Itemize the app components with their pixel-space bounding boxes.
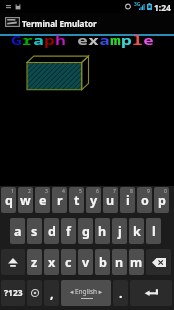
button[interactable]: Enter xyxy=(130,280,172,306)
staticText: g xyxy=(82,223,90,240)
staticText: a xyxy=(33,32,45,48)
staticText: 2 xyxy=(28,188,31,195)
button[interactable]: d xyxy=(44,218,59,244)
staticText: , xyxy=(50,285,54,302)
staticText: ◂ English ▸ xyxy=(70,287,103,296)
button[interactable]: h xyxy=(95,218,110,244)
staticText: o xyxy=(141,192,149,209)
staticText: p xyxy=(44,32,56,48)
staticText: u xyxy=(106,192,115,209)
staticText: f xyxy=(66,223,71,240)
staticText: i xyxy=(126,192,130,209)
staticText: 6 xyxy=(96,188,99,195)
staticText: 1 xyxy=(11,188,14,195)
staticText: s xyxy=(31,223,38,240)
button[interactable]: t xyxy=(69,187,84,213)
staticText: Terminal Emulator xyxy=(22,18,97,29)
staticText: x xyxy=(88,32,100,48)
button[interactable]: j xyxy=(112,218,127,244)
staticText: a xyxy=(99,32,111,48)
staticText: 0 xyxy=(164,188,167,195)
staticText: 9 xyxy=(147,188,150,195)
button[interactable]: , xyxy=(44,280,59,306)
button[interactable]: e xyxy=(35,187,50,213)
staticText: j xyxy=(118,223,122,240)
staticText: m xyxy=(110,32,122,48)
button[interactable]: c xyxy=(61,249,76,275)
button[interactable]: Backspace xyxy=(146,249,171,275)
button[interactable]: p xyxy=(154,187,169,213)
staticText: a xyxy=(14,223,22,240)
staticText: x xyxy=(48,254,56,271)
staticText: k xyxy=(133,223,141,240)
staticText: ?123 xyxy=(4,287,23,299)
staticText: . xyxy=(119,285,123,302)
staticText: q xyxy=(5,192,13,209)
staticText: c xyxy=(65,254,72,271)
staticText: 3 xyxy=(45,188,48,195)
button[interactable]: k xyxy=(129,218,144,244)
staticText: r xyxy=(57,192,63,209)
button[interactable]: u xyxy=(103,187,118,213)
staticText: 7 xyxy=(113,188,116,195)
button[interactable]: v xyxy=(78,249,93,275)
button[interactable]: y xyxy=(86,187,101,213)
staticText: p xyxy=(121,32,133,48)
staticText: 8 xyxy=(130,188,133,195)
staticText: b xyxy=(99,254,107,271)
button[interactable]: w xyxy=(18,187,33,213)
staticText: y xyxy=(90,192,98,209)
staticText: h xyxy=(55,32,67,48)
button[interactable]: x xyxy=(44,249,59,275)
button[interactable]: b xyxy=(95,249,110,275)
button[interactable]: i xyxy=(120,187,135,213)
staticText: 4 xyxy=(62,188,65,195)
button[interactable]: ?123 xyxy=(1,280,25,306)
button[interactable]: f xyxy=(61,218,76,244)
staticText: d xyxy=(48,223,56,240)
staticText: z xyxy=(31,254,38,271)
button[interactable]: . xyxy=(113,280,128,306)
button[interactable]: g xyxy=(78,218,93,244)
staticText: G xyxy=(11,32,23,48)
staticText: h xyxy=(98,223,107,240)
button[interactable]: q xyxy=(1,187,16,213)
button[interactable]: Input options xyxy=(27,280,42,306)
staticText: 1:24 xyxy=(154,2,171,14)
staticText: 5 xyxy=(79,188,82,195)
staticText: e xyxy=(143,32,155,48)
button[interactable]: a xyxy=(10,218,25,244)
staticText: t xyxy=(74,192,80,209)
staticText: e xyxy=(77,32,89,48)
staticText xyxy=(66,32,78,48)
button[interactable]: r xyxy=(52,187,67,213)
staticText: n xyxy=(115,254,124,271)
button[interactable]: l xyxy=(146,218,161,244)
button[interactable]: Terminal Emulator xyxy=(0,13,174,34)
staticText: w xyxy=(20,192,31,209)
staticText: 3G xyxy=(134,1,141,8)
button[interactable]: z xyxy=(27,249,42,275)
button[interactable]: o xyxy=(137,187,152,213)
staticText: p xyxy=(158,192,166,209)
staticText: v xyxy=(82,254,90,271)
staticText: l xyxy=(152,223,156,240)
button[interactable]: s xyxy=(27,218,42,244)
button[interactable]: Shift xyxy=(1,249,25,275)
staticText: e xyxy=(39,192,47,209)
button[interactable]: ◂ English ▸ xyxy=(61,280,111,306)
staticText: m xyxy=(130,254,143,271)
button[interactable]: n xyxy=(112,249,127,275)
staticText: l xyxy=(132,32,144,48)
button[interactable]: m xyxy=(129,249,144,275)
staticText: r xyxy=(22,32,34,48)
